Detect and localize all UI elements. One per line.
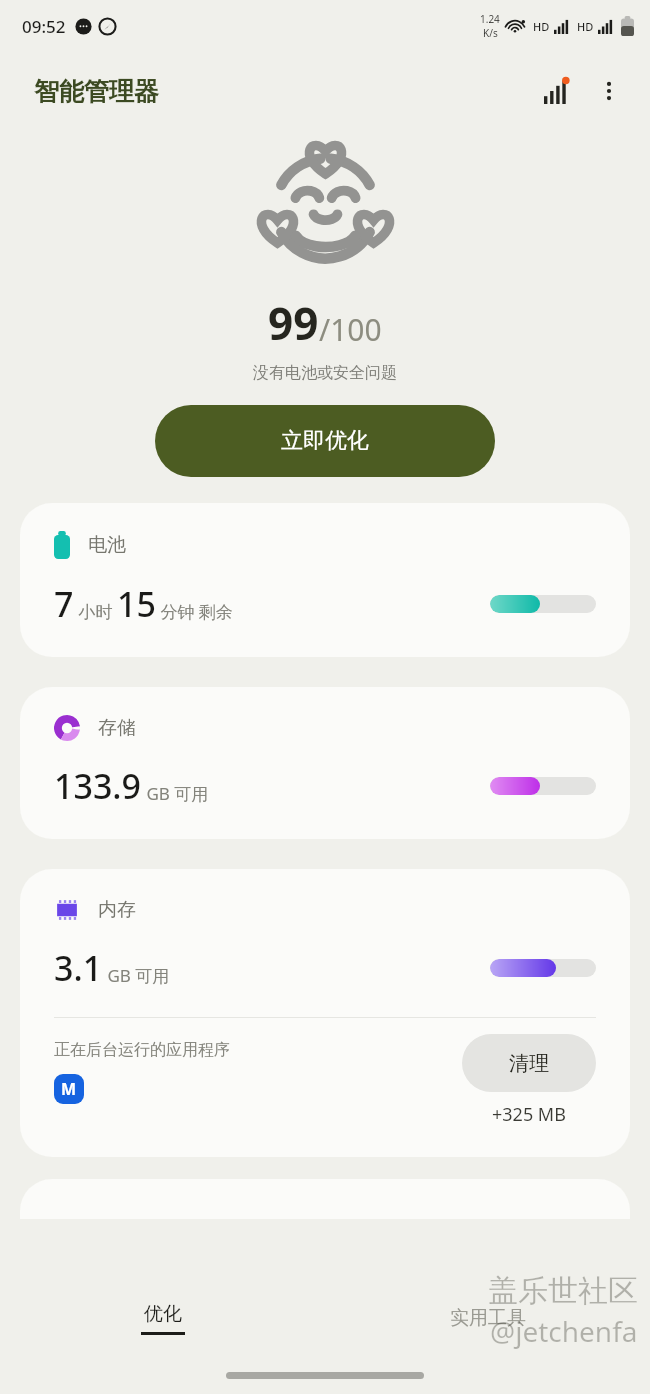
staticText: @jetchenfa [490, 1312, 638, 1350]
staticText: HD [533, 19, 550, 34]
staticText: 7 [54, 581, 74, 627]
staticText: 1.24 [480, 12, 500, 26]
staticText: /100 [319, 309, 382, 350]
staticText: 15 [117, 581, 156, 627]
button[interactable]: App [54, 1074, 84, 1104]
staticText: 正在后台运行的应用程序 [54, 1040, 230, 1060]
staticText: GB 可用 [142, 782, 209, 805]
button[interactable]: 存储 [20, 687, 630, 839]
staticText: 小时 [74, 600, 117, 623]
staticText: 盖乐世社区 [488, 1272, 638, 1310]
staticText: K/s [483, 26, 498, 40]
staticText: 3.1 [54, 945, 103, 991]
staticText: 99 [268, 293, 319, 353]
staticText: 没有电池或安全问题 [253, 363, 397, 383]
button[interactable]: 清理 [462, 1034, 596, 1092]
staticText: 清理 [509, 1051, 549, 1076]
staticText: 133.9 [54, 763, 142, 809]
staticText: 09:52 [22, 15, 66, 38]
staticText: M [61, 1078, 77, 1100]
staticText: 立即优化 [281, 427, 369, 455]
staticText: +325 MB [492, 1102, 566, 1127]
staticText: 分钟 剩余 [156, 600, 233, 623]
button[interactable]: 内存 [54, 869, 596, 1017]
button[interactable]: 实用工具 [325, 1280, 650, 1356]
button[interactable]: 电池 [20, 503, 630, 657]
staticText: 实用工具 [450, 1306, 526, 1330]
button[interactable]: Usage statistics [534, 68, 580, 114]
staticText: HD [577, 19, 594, 34]
staticText: GB 可用 [103, 964, 170, 987]
button[interactable]: More options [586, 68, 632, 114]
staticText: 电池 [88, 533, 126, 557]
staticText: 智能管理器 [34, 76, 159, 107]
staticText: 存储 [98, 716, 136, 740]
staticText: 内存 [98, 898, 136, 922]
staticText: 优化 [144, 1302, 182, 1326]
button[interactable]: 优化 [0, 1280, 325, 1356]
button[interactable]: 立即优化 [155, 405, 495, 477]
